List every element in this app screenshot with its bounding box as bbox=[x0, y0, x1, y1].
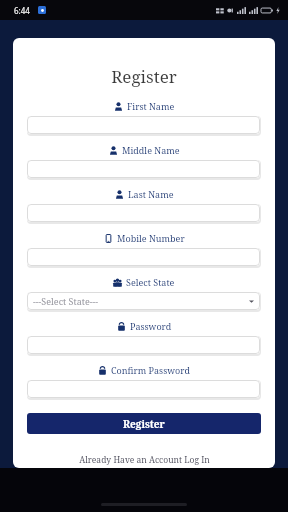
staticText: Register bbox=[27, 65, 261, 88]
button[interactable]: Already Have an Account Log In bbox=[27, 454, 261, 466]
staticText: 6:44 bbox=[14, 5, 30, 16]
staticText: Mobile Number bbox=[117, 232, 185, 244]
button[interactable] bbox=[27, 336, 260, 354]
staticText: Confirm Password bbox=[111, 364, 190, 376]
staticText: Already Have an Account Log In bbox=[79, 454, 210, 466]
staticText: First Name bbox=[127, 100, 175, 112]
staticText: ---Select State--- bbox=[33, 295, 99, 307]
button[interactable] bbox=[27, 204, 260, 222]
button[interactable] bbox=[27, 160, 260, 178]
staticText: Last Name bbox=[128, 188, 174, 200]
staticText: Select State bbox=[126, 276, 175, 288]
button[interactable]: Register bbox=[27, 413, 261, 434]
button[interactable] bbox=[27, 116, 260, 134]
button[interactable] bbox=[27, 380, 260, 398]
button[interactable]: ---Select State--- bbox=[27, 292, 260, 310]
staticText: Register bbox=[123, 417, 165, 431]
button[interactable] bbox=[27, 248, 260, 266]
staticText: Password bbox=[130, 320, 172, 332]
staticText: Middle Name bbox=[122, 144, 180, 156]
